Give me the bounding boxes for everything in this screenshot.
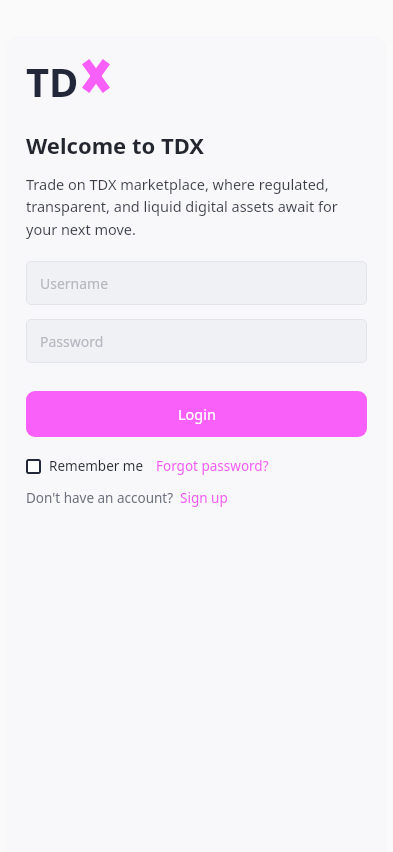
button[interactable]: Password (26, 319, 367, 363)
staticText: Password (40, 332, 104, 351)
button[interactable]: Sign up (180, 489, 228, 507)
button[interactable]: Login (26, 391, 367, 437)
staticText: TD (26, 54, 79, 108)
button[interactable]: Forgot password? (156, 457, 269, 475)
staticText: Trade on TDX marketplace, where regulate… (26, 174, 367, 239)
staticText: Don't have an account? (26, 489, 174, 507)
staticText: Login (178, 404, 216, 424)
other: Remember me checkbox (26, 459, 41, 474)
staticText: Username (40, 274, 109, 293)
button[interactable]: Remember me checkbox (26, 457, 144, 475)
staticText: Sign up (180, 489, 228, 507)
staticText: Remember me (49, 457, 144, 475)
staticText: Forgot password? (156, 457, 269, 475)
staticText: Welcome to TDX (26, 130, 205, 160)
button[interactable]: Username (26, 261, 367, 305)
